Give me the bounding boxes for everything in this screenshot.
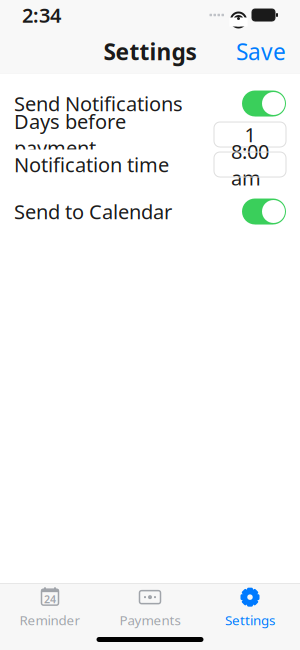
staticText: Send to Calendar bbox=[14, 198, 172, 225]
staticText: Notification time bbox=[14, 151, 169, 178]
staticText: Save bbox=[236, 36, 286, 66]
button[interactable]: Days before payment bbox=[0, 119, 300, 149]
button[interactable]: Save bbox=[222, 26, 300, 76]
staticText: Days before payment bbox=[14, 108, 126, 161]
button[interactable]: Settings bbox=[200, 580, 300, 633]
button[interactable]: Payments bbox=[100, 580, 200, 633]
staticText: Reminder bbox=[19, 611, 80, 629]
staticText: 24 bbox=[44, 592, 56, 606]
staticText: Settings bbox=[225, 611, 275, 629]
staticText: Payments bbox=[119, 611, 180, 629]
staticText: 1 bbox=[244, 121, 255, 148]
staticText: Settings bbox=[103, 36, 196, 66]
button[interactable]: Send to Calendar bbox=[0, 195, 300, 227]
staticText: 8:00 am bbox=[231, 138, 269, 191]
button[interactable]: Notification time bbox=[0, 149, 300, 179]
button[interactable]: Send Notifications bbox=[0, 87, 300, 119]
staticText: 2:34 bbox=[22, 2, 61, 28]
staticText: Send Notifications bbox=[14, 90, 183, 117]
button[interactable]: 24 bbox=[0, 580, 100, 633]
